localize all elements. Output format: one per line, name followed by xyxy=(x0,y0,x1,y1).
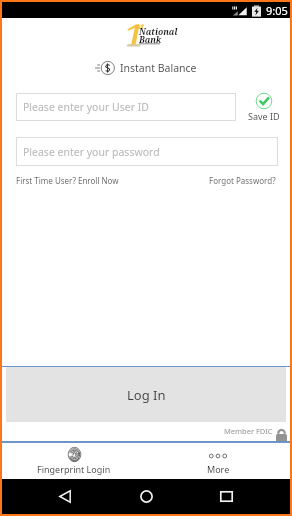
button[interactable]: Fingerprint Login xyxy=(2,443,146,479)
staticText: Bank xyxy=(139,34,162,46)
staticText: Please enter your User ID xyxy=(23,100,149,114)
button[interactable]: Log In xyxy=(6,367,286,422)
button[interactable]: First Time User? Enroll Now xyxy=(16,175,119,186)
staticText: 9:05 xyxy=(266,3,288,18)
button[interactable]: Recents xyxy=(206,479,246,514)
staticText: Member FDIC xyxy=(224,426,273,436)
button[interactable]: Home xyxy=(126,479,166,514)
staticText: Please enter your password xyxy=(23,145,160,159)
staticText: National xyxy=(139,26,178,38)
button[interactable]: Save ID xyxy=(246,92,282,122)
staticText: st xyxy=(137,21,144,31)
staticText: Log In xyxy=(127,386,166,404)
staticText: Save ID xyxy=(248,110,280,122)
button[interactable]: Forgot Password? xyxy=(209,175,276,186)
staticText: Instant Balance xyxy=(120,61,197,75)
button[interactable]: Instant Balance xyxy=(89,58,203,78)
staticText: More xyxy=(207,463,230,475)
staticText: Fingerprint Login xyxy=(37,463,111,475)
button[interactable]: Back xyxy=(45,479,85,514)
button[interactable]: More xyxy=(146,443,290,479)
